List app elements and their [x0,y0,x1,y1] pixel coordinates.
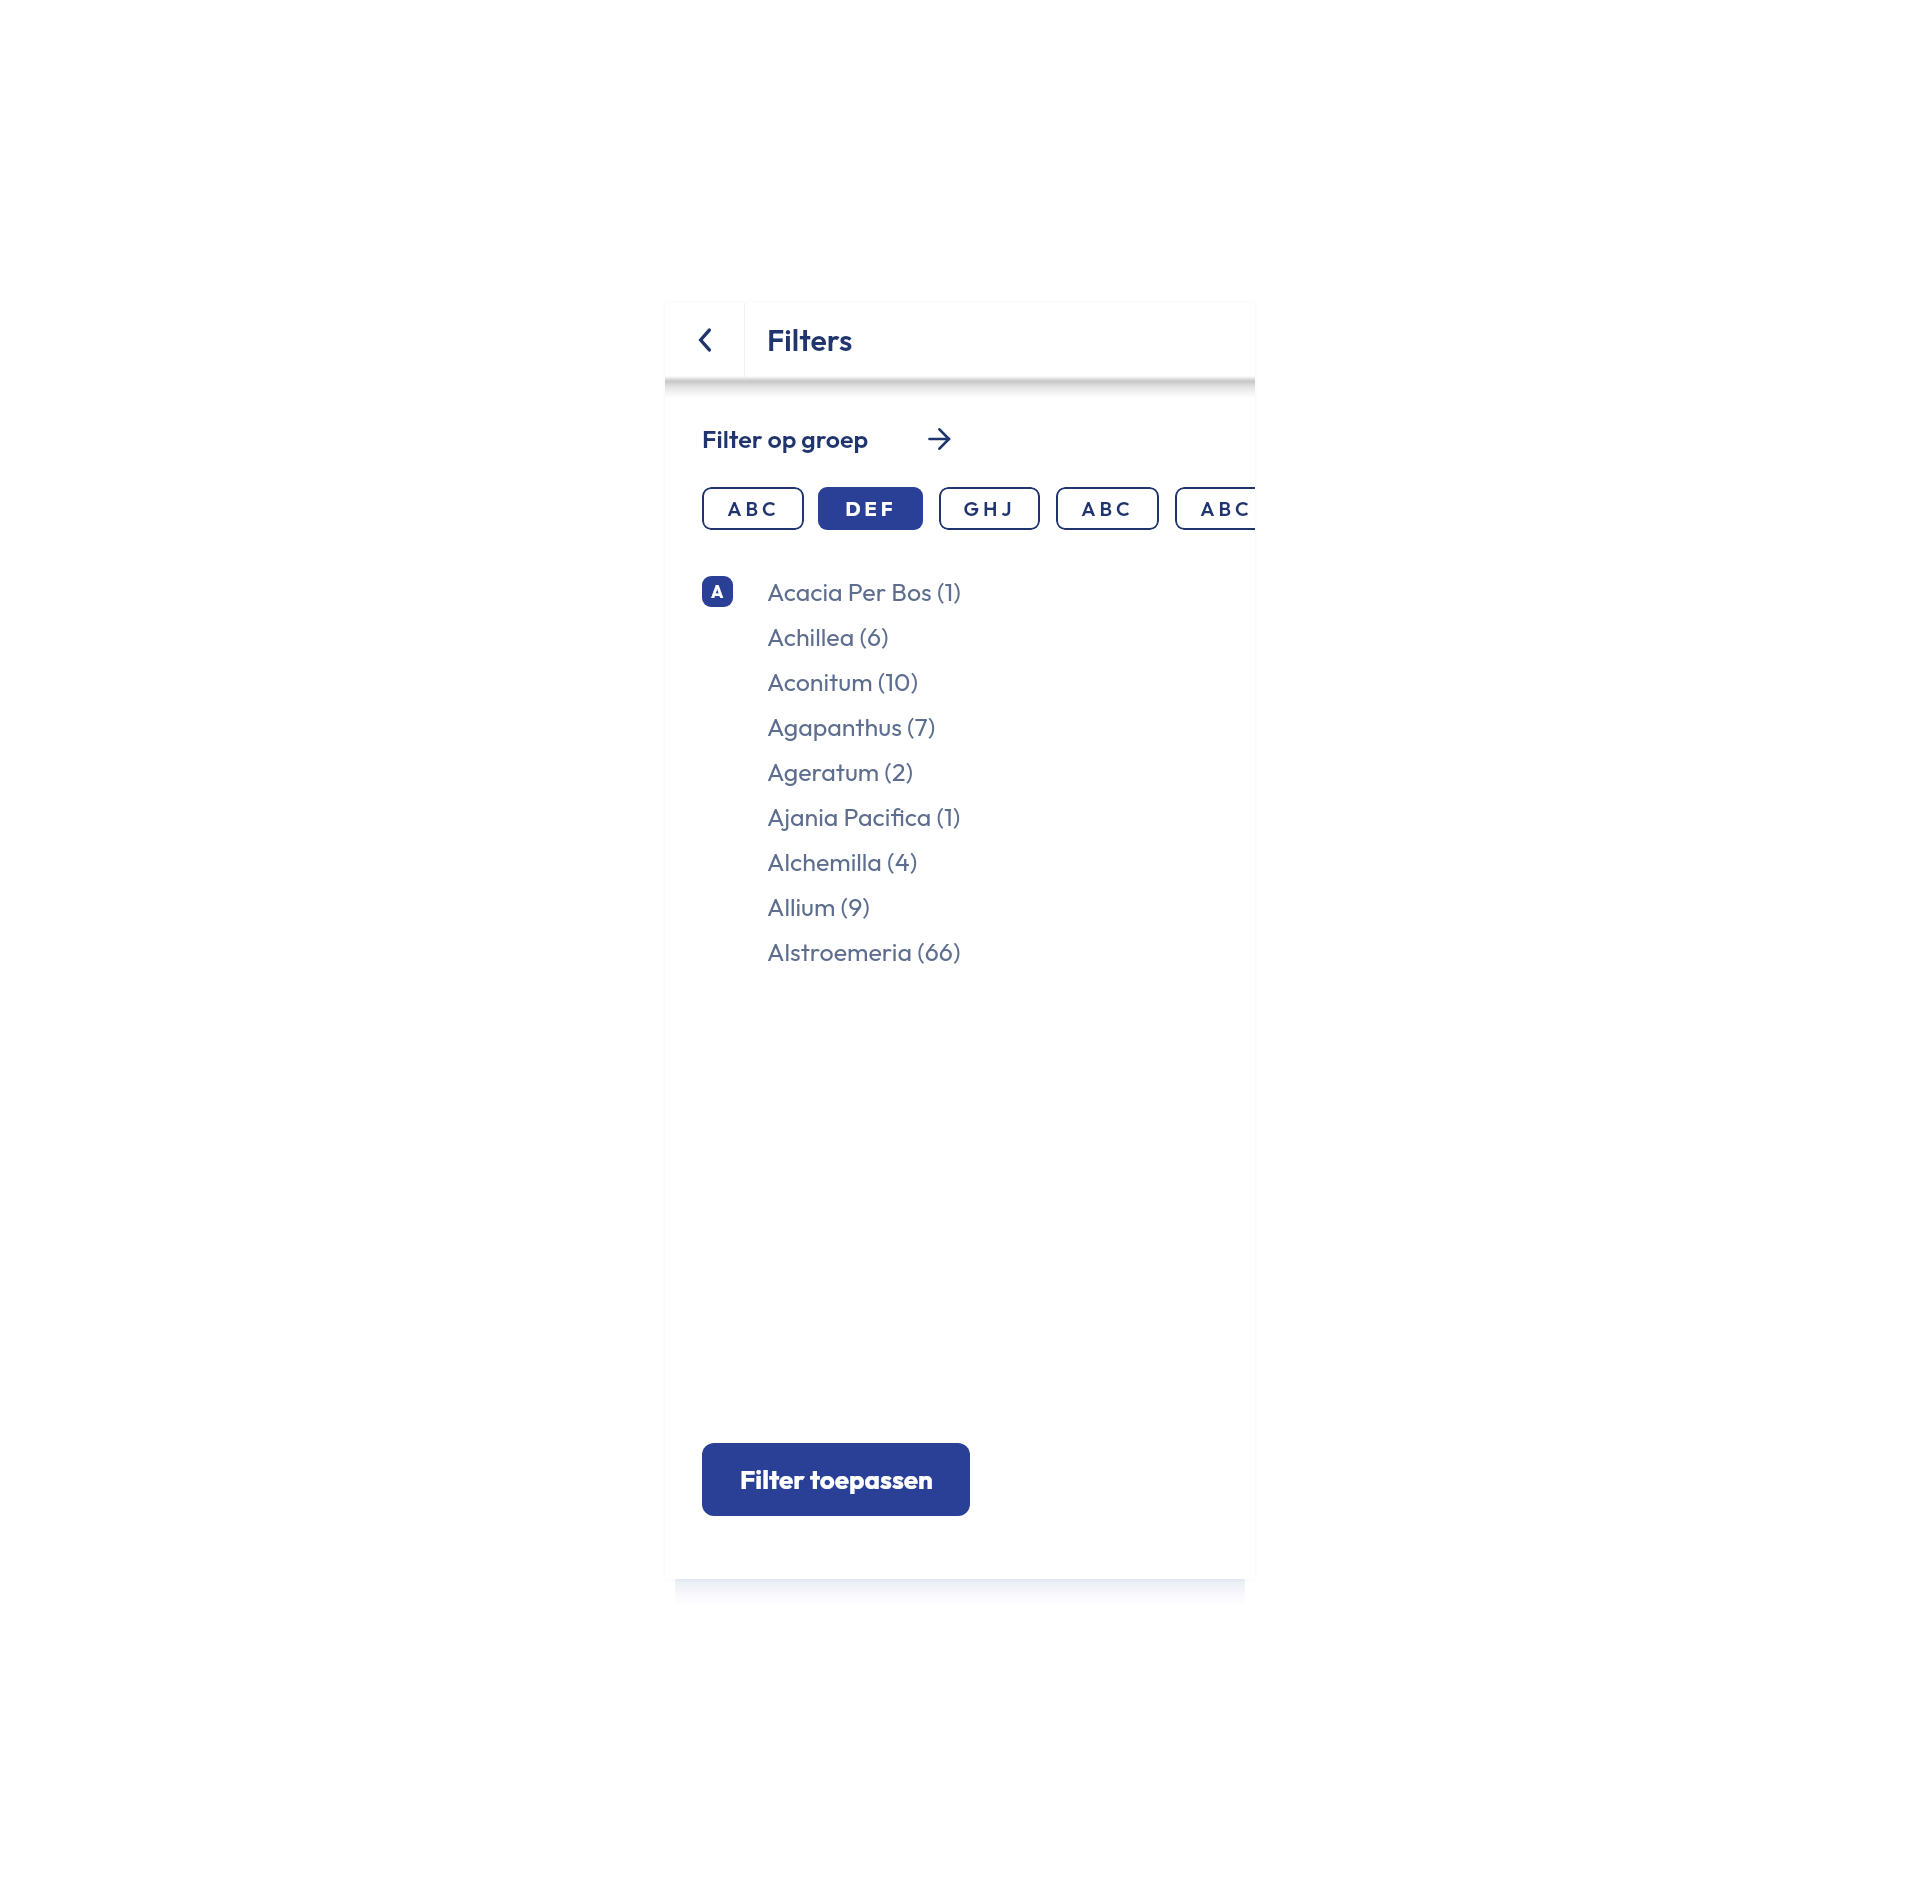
button[interactable]: Terug [665,303,744,377]
button[interactable]: Achillea (6) [665,614,1255,659]
staticText: A [711,581,724,602]
staticText: Agapanthus (7) [767,711,936,743]
staticText: GHJ [963,496,1016,521]
button[interactable]: Ajania Pacifica (1) [665,794,1255,839]
button[interactable]: ABC [1175,487,1255,530]
staticText: ABC [1200,496,1253,521]
staticText: Alchemilla (4) [767,846,918,878]
staticText: Alstroemeria (66) [767,936,961,968]
staticText: Aconitum (10) [767,666,918,698]
staticText: Allium (9) [767,891,870,923]
staticText: Filter toepassen [740,1463,933,1496]
button[interactable]: Ageratum (2) [665,749,1255,794]
staticText: Filters [767,321,853,359]
button[interactable]: DEF [818,487,923,530]
staticText: Ajania Pacifica (1) [767,801,961,833]
button[interactable]: Filter toepassen [702,1443,970,1516]
button[interactable]: Alstroemeria (66) [665,929,1255,974]
staticText: Filter op groep [702,423,869,455]
staticText: ABC [727,496,780,521]
button[interactable]: Volgende [928,428,950,450]
button[interactable]: Allium (9) [665,884,1255,929]
button[interactable]: Alchemilla (4) [665,839,1255,884]
button[interactable]: GHJ [939,487,1040,530]
staticText: Ageratum (2) [767,756,914,788]
button[interactable]: ABC [1056,487,1159,530]
button[interactable]: Aconitum (10) [665,659,1255,704]
button[interactable]: ABC [702,487,804,530]
button[interactable]: Agapanthus (7) [665,704,1255,749]
staticText: Acacia Per Bos (1) [767,576,961,608]
staticText: Achillea (6) [767,621,889,653]
staticText: ABC [1081,496,1134,521]
staticText: DEF [845,496,897,521]
button[interactable]: A [665,569,1255,614]
